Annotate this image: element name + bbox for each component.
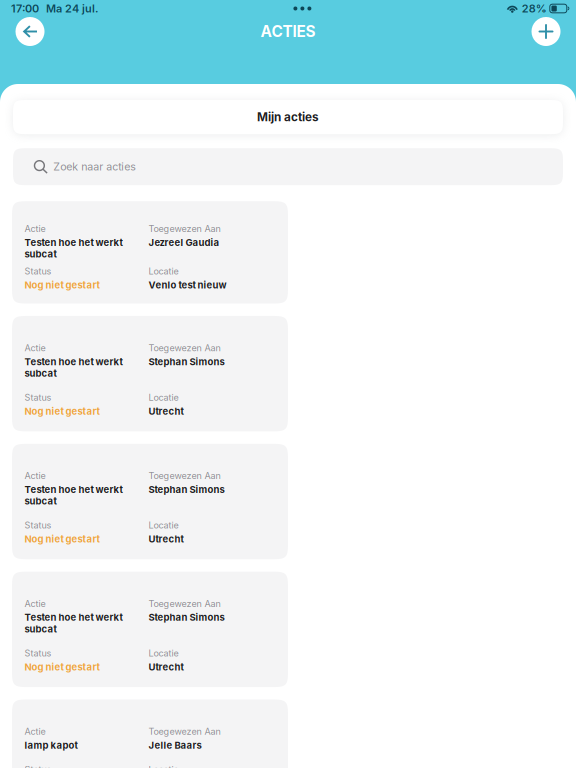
staticText: 28% (522, 2, 547, 15)
staticText: Locatie (148, 648, 178, 659)
staticText: Status (24, 520, 51, 531)
staticText: Zoek naar acties (53, 160, 136, 173)
staticText: Toegewezen Aan (148, 470, 220, 481)
staticText: Utrecht (148, 405, 183, 417)
button[interactable]: Actie (12, 201, 288, 303)
staticText: ACTIES (260, 22, 315, 41)
staticText: lamp kapot (24, 739, 77, 751)
staticText: Locatie (148, 764, 178, 768)
staticText: Status (24, 392, 51, 403)
staticText: Actie (24, 223, 45, 234)
staticText: Testen hoe het werkt subcat (24, 237, 122, 260)
staticText: Locatie (148, 520, 178, 531)
button[interactable]: Actie (12, 699, 288, 768)
staticText: Nog niet gestart (24, 279, 99, 291)
staticText: Nog niet gestart (24, 533, 99, 545)
staticText: Testen hoe het werkt subcat (24, 484, 122, 507)
staticText: Utrecht (148, 661, 183, 673)
staticText: Status (24, 764, 51, 768)
staticText: Locatie (148, 392, 178, 403)
staticText: Testen hoe het werkt subcat (24, 612, 122, 635)
button[interactable]: Actie (12, 572, 288, 687)
button[interactable]: Terug (12, 13, 48, 49)
staticText: Status (24, 266, 51, 277)
staticText: Actie (24, 726, 45, 737)
staticText: Stephan Simons (148, 612, 224, 623)
button[interactable]: Mijn acties (13, 100, 563, 134)
staticText: Jezreel Gaudia (148, 237, 219, 248)
staticText: Actie (24, 598, 45, 609)
button[interactable]: Actie (12, 316, 288, 431)
staticText: Actie (24, 342, 45, 353)
staticText: Venlo test nieuw (148, 279, 226, 291)
staticText: Testen hoe het werkt subcat (24, 356, 122, 379)
staticText: Mijn acties (257, 110, 319, 124)
staticText: Jelle Baars (148, 739, 201, 751)
staticText: 17:00 (11, 2, 39, 15)
staticText: Stephan Simons (148, 356, 224, 367)
staticText: Nog niet gestart (24, 405, 99, 417)
staticText: Locatie (148, 266, 178, 277)
button[interactable]: Toevoegen (528, 13, 564, 49)
staticText: Toegewezen Aan (148, 342, 220, 353)
staticText: Stephan Simons (148, 484, 224, 495)
staticText: Ma 24 jul. (46, 2, 98, 15)
staticText: Toegewezen Aan (148, 598, 220, 609)
staticText: Toegewezen Aan (148, 223, 220, 234)
staticText: Nog niet gestart (24, 661, 99, 673)
button[interactable]: Actie (12, 444, 288, 559)
staticText: Toegewezen Aan (148, 726, 220, 737)
staticText: Actie (24, 470, 45, 481)
staticText: Utrecht (148, 533, 183, 545)
staticText: Status (24, 648, 51, 659)
